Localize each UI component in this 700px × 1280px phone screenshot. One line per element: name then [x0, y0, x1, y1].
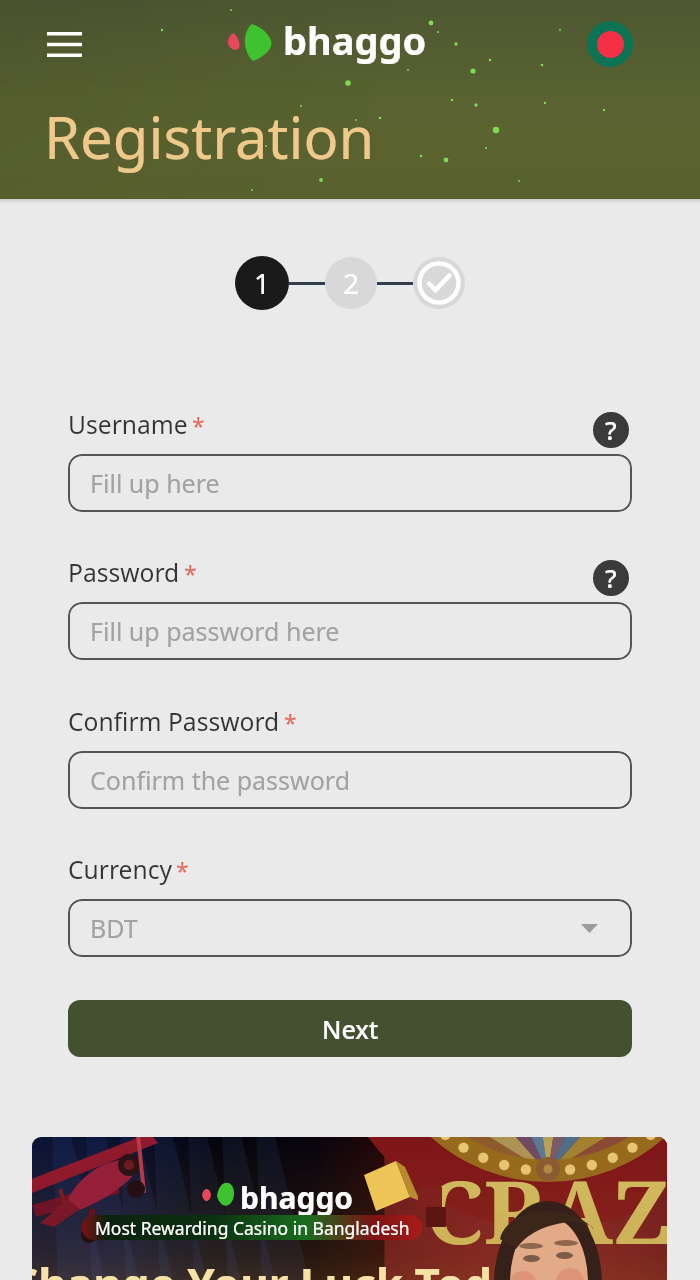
staticText: *: [184, 558, 197, 589]
button[interactable]: Completed step: [413, 257, 465, 309]
staticText: Most Rewarding Casino in Bangladesh: [95, 1216, 410, 1240]
staticText: 1: [254, 264, 271, 302]
staticText: bhaggo: [283, 14, 427, 66]
staticText: Change Your Luck Tod: [32, 1254, 493, 1280]
staticText: BDT: [90, 911, 138, 945]
staticText: Username: [68, 408, 188, 442]
staticText: *: [176, 855, 189, 886]
button[interactable]: Help: [593, 412, 629, 448]
staticText: ?: [605, 412, 617, 447]
staticText: Fill up here: [90, 466, 220, 500]
button[interactable]: Next: [68, 1000, 632, 1057]
button[interactable]: Select language: [586, 20, 634, 68]
button[interactable]: Fill up password here: [68, 602, 632, 660]
button[interactable]: Promotion banner: [32, 1137, 667, 1280]
button[interactable]: Fill up here: [68, 454, 632, 512]
button[interactable]: 2: [325, 257, 377, 309]
staticText: Confirm the password: [90, 763, 351, 797]
staticText: bhaggo: [240, 1177, 354, 1218]
button[interactable]: Help: [593, 560, 629, 596]
staticText: ?: [605, 560, 617, 595]
button[interactable]: Confirm the password: [68, 751, 632, 809]
staticText: 2: [343, 264, 360, 302]
staticText: Password: [68, 556, 180, 590]
button[interactable]: Menu: [38, 18, 90, 70]
staticText: Next: [322, 1012, 379, 1046]
staticText: *: [192, 410, 205, 441]
button[interactable]: BDT: [68, 899, 632, 957]
staticText: Fill up password here: [90, 614, 340, 648]
staticText: Confirm Password: [68, 705, 280, 739]
staticText: CRAZY: [425, 1150, 667, 1270]
staticText: Currency: [68, 853, 172, 887]
staticText: *: [284, 707, 297, 738]
staticText: Registration: [44, 97, 375, 176]
button[interactable]: 1: [235, 256, 289, 310]
